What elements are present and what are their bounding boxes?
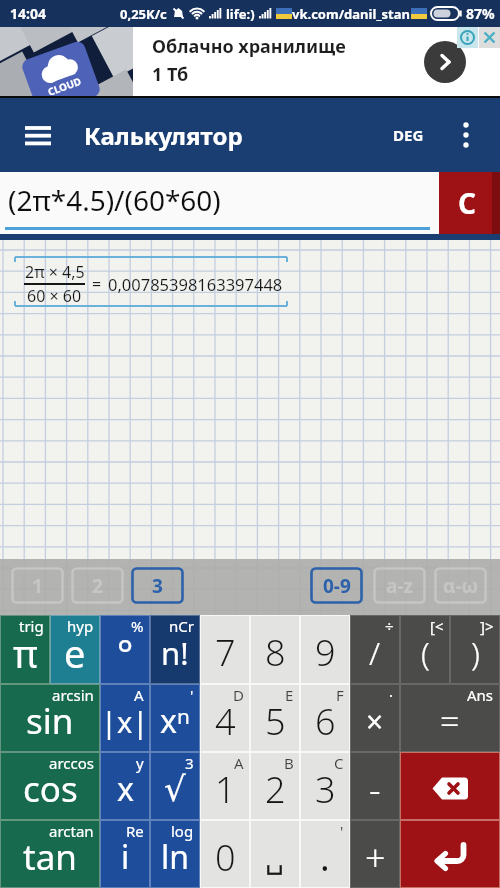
button[interactable]: · [351,685,399,751]
staticText: · [389,685,394,705]
staticText: a-z [386,573,413,599]
button[interactable]: ]> [451,616,499,683]
button[interactable]: 3 [131,567,184,604]
staticText: % [131,616,144,636]
staticText: + [365,833,386,882]
staticText: 0,25K/c [120,5,167,23]
staticText: 14:04 [10,4,46,23]
staticText: 1 [215,765,236,814]
button[interactable]: Ans [401,685,499,751]
button[interactable]: α-ω [434,567,487,604]
staticText: ( [421,631,430,675]
staticText: Ans [467,685,494,705]
button[interactable]: 2 [71,567,124,604]
staticText: 60 × 60 [27,285,82,307]
staticText: xⁿ [160,699,190,743]
staticText: √ [164,769,186,809]
staticText: A [234,753,244,773]
button[interactable]: B [251,753,299,819]
staticText: log [171,821,194,841]
staticText: 2π × 4,5 [25,261,85,283]
button[interactable]: 0 [201,821,249,887]
staticText: 1 [32,573,43,599]
staticText: 5 [265,697,286,746]
button[interactable]: 7 [201,616,249,683]
staticText: arccos [49,753,94,773]
staticText: C [458,184,476,222]
staticText: 1 Тб [152,62,189,87]
button[interactable]: Re [101,821,149,887]
button[interactable]: A [101,685,149,751]
staticText: = [440,698,460,744]
staticText: C [334,753,344,773]
button[interactable]: C [439,172,500,234]
staticText: 9 [315,628,336,677]
button[interactable]: 8 [251,616,299,683]
staticText: - [369,765,381,814]
button[interactable]: C [301,753,349,819]
button[interactable]: - [351,753,399,819]
button[interactable]: y [101,753,149,819]
button[interactable]: ' [151,685,199,751]
staticText: arcsin [52,685,94,705]
staticText: sin [26,697,74,745]
button[interactable]: nCr [151,616,199,683]
button[interactable]: trig [1,616,49,683]
staticText: B [284,753,294,773]
staticText: ]> [480,616,494,636]
staticText: life:) [226,5,255,23]
staticText: F [336,685,344,705]
button[interactable]: arctan [1,821,99,887]
button[interactable]: hyp [51,616,99,683]
button[interactable]: 1 [11,567,64,604]
staticText: Калькулятор [84,119,243,152]
button[interactable]: % [101,616,149,683]
button[interactable] [0,98,64,172]
button[interactable]: + [351,821,399,887]
button[interactable]: log [151,821,199,887]
button[interactable] [479,27,500,48]
button[interactable] [401,821,499,887]
staticText: 2 [92,573,103,599]
staticText: × [366,701,384,742]
button[interactable]: A [201,753,249,819]
staticText: i [121,835,130,879]
staticText: D [233,685,244,705]
button[interactable]: D [201,685,249,751]
button[interactable] [460,98,472,172]
button[interactable]: E [251,685,299,751]
button[interactable]: ␣ [251,821,299,887]
button[interactable] [424,41,466,83]
button[interactable]: 9 [301,616,349,683]
staticText: / [369,631,381,675]
staticText: DEG [393,125,424,145]
button[interactable]: 3 [151,753,199,819]
staticText: CLOUD [46,74,83,96]
button[interactable]: [< [401,616,449,683]
staticText: Re [126,821,144,841]
staticText: 8 [265,628,286,677]
staticText: E [285,685,294,705]
staticText: A [134,685,144,705]
button[interactable] [401,753,499,819]
button[interactable]: ÷ [351,616,399,683]
staticText: y [136,753,144,773]
button[interactable]: CLOUD [0,27,133,96]
button[interactable]: arcsin [1,685,99,751]
staticText: α-ω [443,573,479,599]
staticText: arctan [49,821,94,841]
button[interactable]: 0-9 [310,567,363,604]
button[interactable]: ' [301,821,349,887]
staticText: cos [23,765,78,813]
staticText: x [117,767,134,811]
staticText: 0 [215,833,236,882]
button[interactable]: a-z [373,567,426,604]
staticText: ) [471,631,480,675]
staticText: 87% [466,4,495,23]
button[interactable]: DEG [393,98,424,172]
button[interactable]: arccos [1,753,99,819]
button[interactable]: F [301,685,349,751]
button[interactable] [457,27,478,48]
staticText: (2π*4.5)/(60*60) [8,181,221,219]
staticText: 7 [215,628,236,677]
